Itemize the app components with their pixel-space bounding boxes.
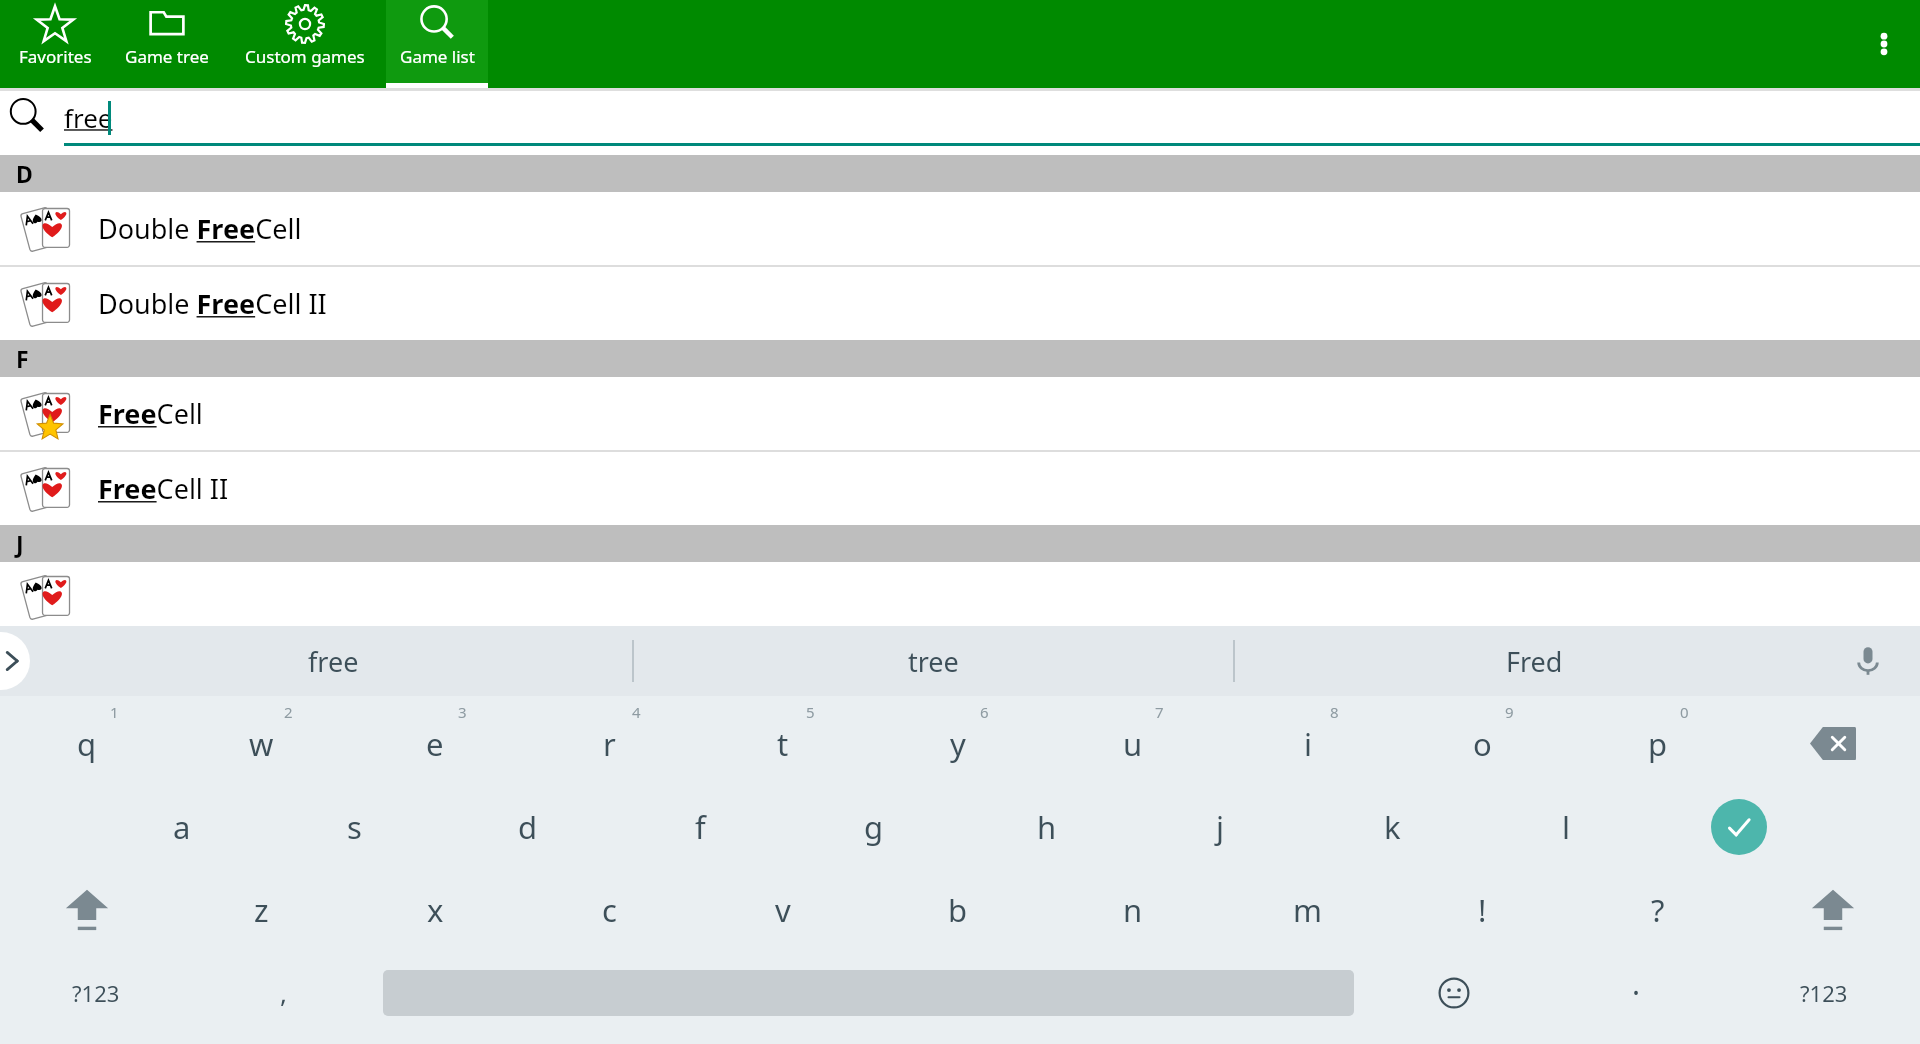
button[interactable]: tree — [634, 626, 1233, 696]
staticText: o — [1473, 723, 1492, 765]
button[interactable]: ? — [1570, 868, 1745, 951]
staticText: 5 — [806, 702, 815, 722]
staticText: l — [1562, 806, 1570, 848]
staticText: ?123 — [72, 978, 120, 1008]
staticText: F — [16, 343, 29, 374]
staticText: i — [1304, 723, 1312, 765]
staticText: s — [347, 806, 362, 848]
staticText: ! — [1478, 889, 1487, 931]
staticText: Fred — [1506, 643, 1563, 680]
staticText: 2 — [284, 702, 293, 722]
staticText: J — [16, 528, 24, 559]
button[interactable]: ! — [1395, 868, 1570, 951]
button[interactable]: k — [1306, 785, 1479, 868]
button[interactable]: Double FreeCell II — [0, 267, 1920, 340]
staticText: free — [308, 643, 359, 680]
button[interactable]: Enter — [1652, 785, 1825, 868]
button[interactable]: u — [1045, 702, 1220, 785]
staticText: x — [427, 889, 444, 931]
staticText: 8 — [1330, 702, 1339, 722]
staticText: ? — [1651, 889, 1665, 931]
button[interactable]: e — [348, 702, 522, 785]
button[interactable]: Fred — [1235, 626, 1834, 696]
button[interactable]: Favorites — [0, 0, 110, 88]
button[interactable]: t — [696, 702, 870, 785]
staticText: y — [950, 723, 966, 765]
button[interactable]: i — [1220, 702, 1395, 785]
other: Emoji — [1438, 977, 1470, 1009]
button[interactable]: h — [960, 785, 1133, 868]
button[interactable]: l — [1479, 785, 1652, 868]
button[interactable]: v — [696, 868, 870, 951]
button[interactable]: , — [192, 951, 375, 1034]
button[interactable]: z — [174, 868, 348, 951]
staticText: Double FreeCell — [98, 210, 302, 247]
staticText: 0 — [1680, 702, 1689, 722]
button[interactable]: r — [522, 702, 696, 785]
staticText: 3 — [458, 702, 467, 722]
button[interactable]: q — [0, 702, 174, 785]
button[interactable]: n — [1045, 868, 1220, 951]
button[interactable]: p — [1570, 702, 1745, 785]
button[interactable]: g — [787, 785, 960, 868]
staticText: Favorites — [19, 45, 92, 68]
button[interactable]: b — [870, 868, 1045, 951]
button[interactable]: ?123 — [0, 951, 192, 1034]
staticText: 6 — [980, 702, 989, 722]
button[interactable]: Enter — [1711, 799, 1767, 855]
button[interactable]: Custom games — [224, 0, 386, 88]
staticText: z — [254, 889, 269, 931]
button[interactable]: a — [95, 785, 268, 868]
button[interactable]: More options — [1856, 16, 1912, 72]
staticText: Game list — [400, 45, 475, 68]
button[interactable]: m — [1220, 868, 1395, 951]
staticText: q — [77, 723, 97, 765]
staticText: 7 — [1155, 702, 1164, 722]
staticText: j — [1216, 806, 1224, 848]
staticText: ?123 — [1800, 978, 1848, 1008]
button[interactable]: · — [1545, 951, 1728, 1034]
button[interactable]: Voice input — [1844, 637, 1892, 685]
button[interactable]: o — [1395, 702, 1570, 785]
staticText: FreeCell II — [98, 470, 229, 507]
staticText: f — [695, 806, 706, 848]
button[interactable]: w — [174, 702, 348, 785]
button[interactable]: j — [1133, 785, 1306, 868]
staticText: b — [948, 889, 968, 931]
button[interactable]: Shift — [1745, 868, 1920, 951]
staticText: t — [777, 723, 789, 765]
button[interactable]: s — [268, 785, 441, 868]
staticText: n — [1123, 889, 1143, 931]
button[interactable]: free — [0, 91, 1920, 143]
staticText: a — [173, 806, 191, 848]
button[interactable]: Emoji — [1362, 951, 1545, 1034]
staticText: c — [602, 889, 617, 931]
button[interactable]: Game tree — [110, 0, 224, 88]
button[interactable]: c — [522, 868, 696, 951]
button[interactable]: d — [441, 785, 614, 868]
staticText: , — [280, 975, 287, 1010]
other: Backspace — [1810, 727, 1856, 760]
button[interactable]: x — [348, 868, 522, 951]
button[interactable]: ?123 — [1728, 951, 1920, 1034]
button[interactable]: FreeCell — [0, 377, 1920, 450]
staticText: v — [775, 889, 791, 931]
other: Shift — [1811, 887, 1855, 933]
button[interactable]: Shift — [0, 868, 174, 951]
button[interactable]: Show more suggestions — [0, 632, 30, 690]
staticText: d — [518, 806, 538, 848]
staticText: Custom games — [245, 45, 365, 68]
staticText: h — [1037, 806, 1057, 848]
button[interactable]: f — [614, 785, 787, 868]
button[interactable]: y — [870, 702, 1045, 785]
button[interactable]: FreeCell II — [0, 452, 1920, 525]
button[interactable]: Double FreeCell — [0, 192, 1920, 265]
button[interactable]: free — [34, 626, 632, 696]
button[interactable]: Backspace — [1745, 702, 1920, 785]
staticText: Double FreeCell II — [98, 285, 327, 322]
button[interactable]: Game list — [386, 0, 488, 88]
staticText: 1 — [110, 702, 119, 722]
staticText: D — [16, 158, 33, 189]
staticText: · — [1632, 972, 1641, 1013]
